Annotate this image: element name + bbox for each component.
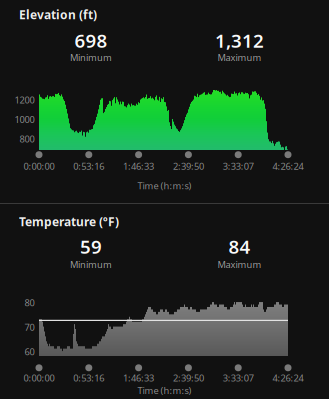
staticText: 698	[74, 28, 107, 53]
staticText: 2:39:50	[173, 160, 204, 172]
staticText: 0:00:00	[23, 372, 54, 384]
staticText: Temperature (ºF)	[19, 213, 119, 229]
staticText: 4:26:24	[272, 160, 303, 172]
staticText: Time (h:m:s)	[137, 384, 191, 397]
staticText: 70	[24, 321, 34, 333]
staticText: Minimum	[70, 51, 112, 63]
staticText: 1:46:33	[123, 160, 154, 172]
staticText: 800	[19, 133, 34, 145]
staticText: 80	[24, 296, 34, 309]
staticText: 60	[24, 345, 34, 358]
staticText: 2:39:50	[173, 372, 204, 384]
staticText: 1,312	[215, 28, 264, 53]
staticText: 3:33:07	[223, 372, 254, 384]
staticText: Minimum	[70, 258, 112, 271]
staticText: 84	[228, 234, 250, 259]
staticText: Time (h:m:s)	[137, 179, 191, 192]
staticText: 0:53:16	[73, 160, 104, 172]
staticText: 59	[80, 234, 102, 259]
staticText: 0:00:00	[23, 160, 54, 172]
staticText: 1200	[14, 94, 34, 106]
staticText: 3:33:07	[223, 160, 254, 172]
staticText: 1:46:33	[123, 372, 154, 384]
staticText: 0:53:16	[73, 372, 104, 384]
staticText: Maximum	[217, 258, 261, 271]
staticText: 4:26:24	[272, 372, 303, 384]
staticText: Elevation (ft)	[19, 6, 97, 22]
staticText: 1000	[14, 113, 34, 126]
staticText: Maximum	[217, 51, 261, 63]
